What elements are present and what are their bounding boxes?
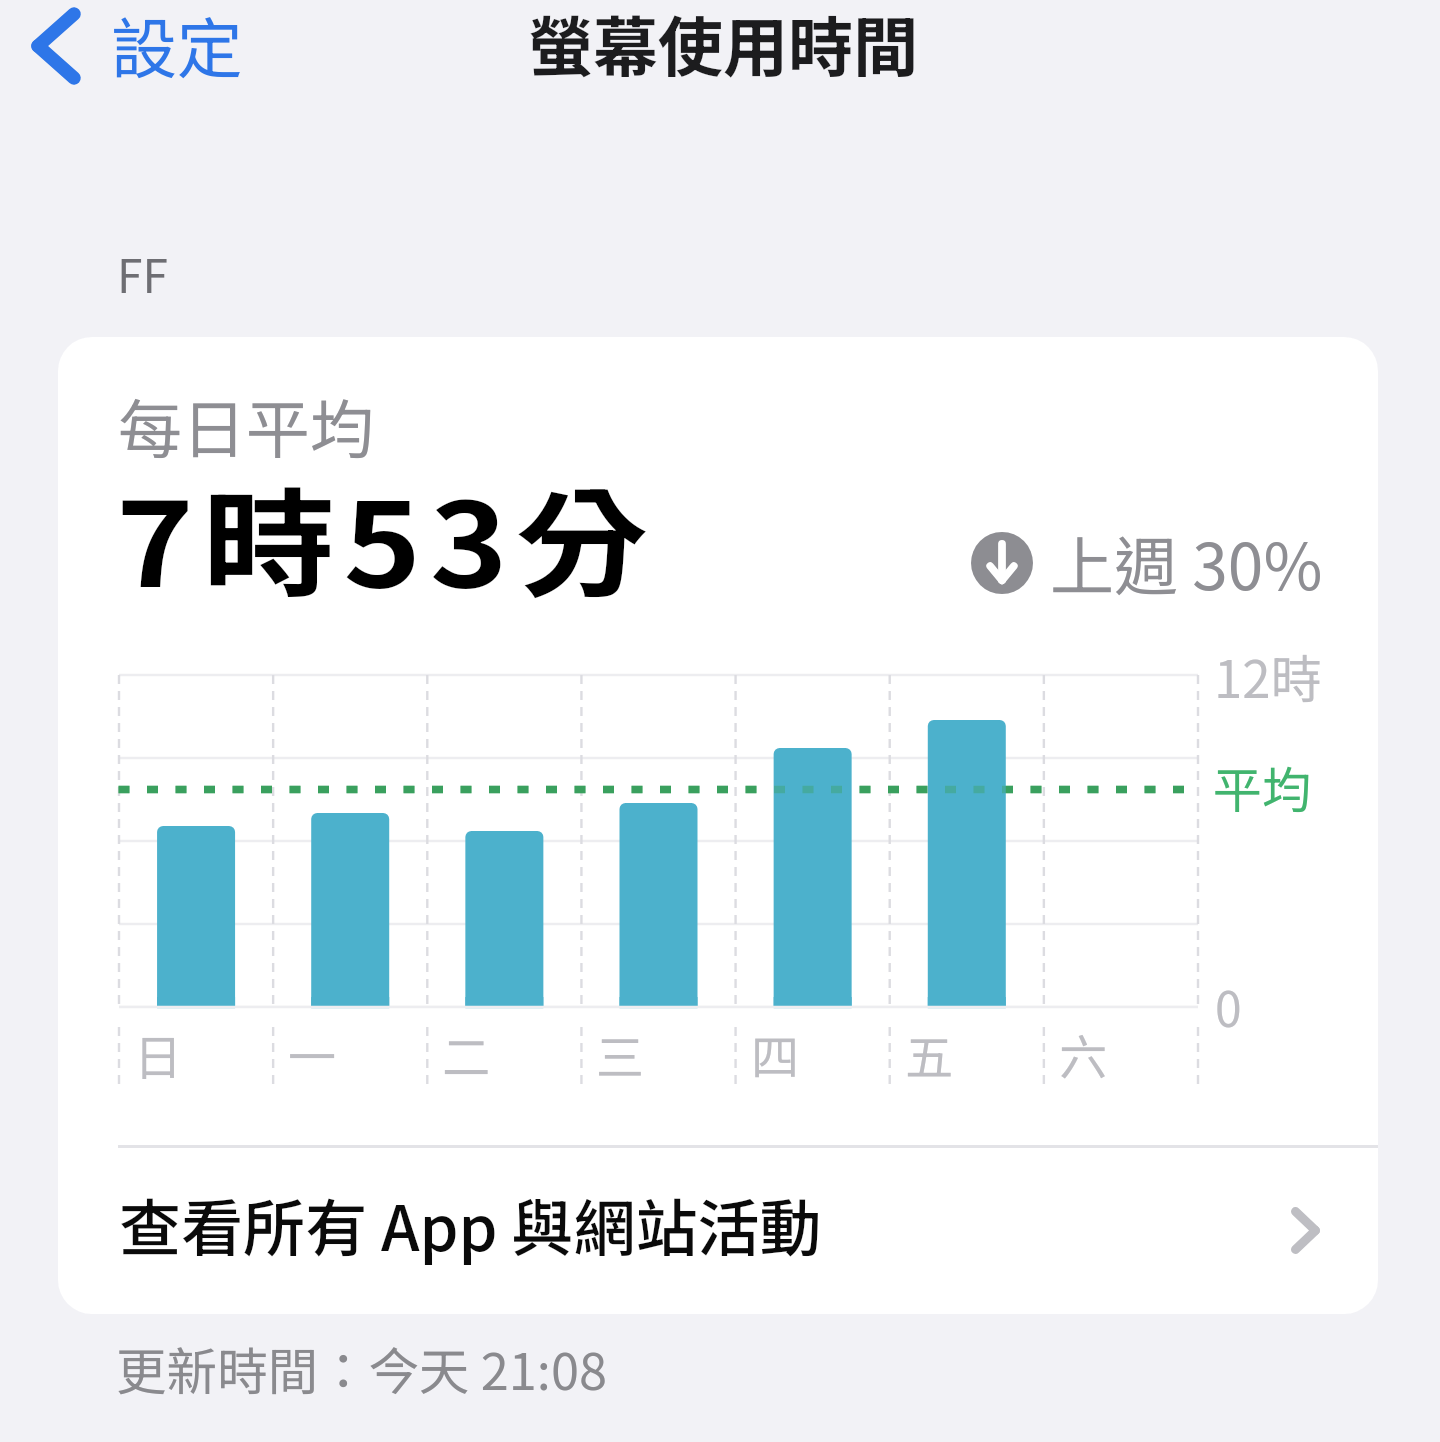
staticText: FF <box>117 240 168 307</box>
staticText: 設定 <box>111 0 243 92</box>
staticText: 螢幕使用時間 <box>528 0 919 90</box>
staticText: 四 <box>751 1019 800 1089</box>
button[interactable]: 查看所有 App 與網站活動 <box>58 1143 1378 1305</box>
staticText: 12時 <box>1214 639 1322 713</box>
staticText: 平均 <box>1213 751 1312 822</box>
staticText: 每日平均 <box>118 379 374 472</box>
staticText: 上週 30% <box>1050 516 1323 609</box>
staticText: 六 <box>1059 1019 1108 1089</box>
staticText: 0 <box>1215 971 1242 1041</box>
staticText: 二 <box>442 1019 491 1089</box>
staticText: 三 <box>596 1019 645 1089</box>
staticText: 五 <box>905 1019 954 1089</box>
staticText: 一 <box>288 1019 337 1089</box>
button[interactable]: Back to Settings <box>18 0 253 100</box>
staticText: 查看所有 App 與網站活動 <box>119 1179 822 1269</box>
staticText: 更新時間：今天 21:08 <box>116 1331 607 1404</box>
staticText: 7時53分 <box>116 451 657 620</box>
staticText: 日 <box>134 1019 183 1089</box>
